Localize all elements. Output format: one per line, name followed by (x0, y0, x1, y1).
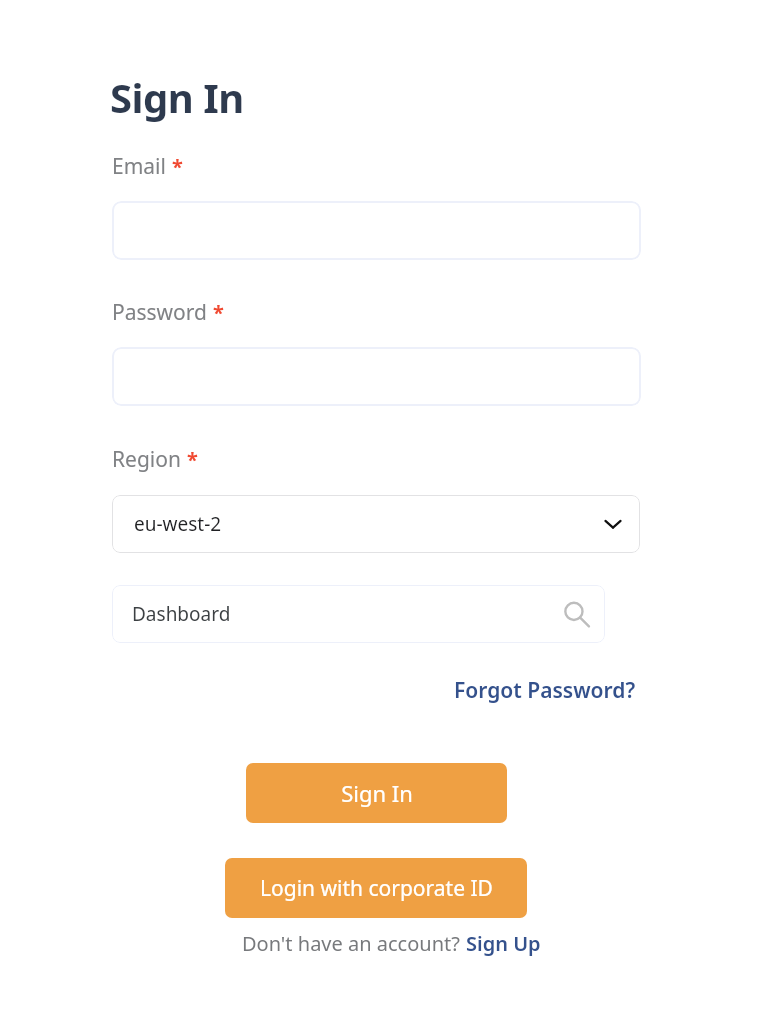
button[interactable]: Sign In (246, 763, 507, 823)
staticText: * (172, 153, 183, 180)
staticText: Login with corporate ID (260, 874, 493, 903)
staticText: * (213, 299, 224, 326)
button[interactable]: Dashboard (112, 585, 605, 643)
staticText: Dashboard (132, 601, 231, 627)
button[interactable]: Login with corporate ID (225, 858, 527, 918)
staticText: eu-west-2 (134, 511, 222, 537)
staticText: Sign In (341, 778, 413, 808)
staticText: Region (112, 445, 181, 474)
staticText: Don't have an account? (242, 930, 466, 957)
staticText: * (187, 446, 198, 473)
other: Search (563, 601, 589, 627)
staticText: Password (112, 298, 207, 327)
button[interactable]: eu-west-2 (112, 495, 640, 553)
button[interactable]: Password input (112, 347, 641, 406)
button[interactable]: Sign Up (466, 930, 541, 957)
staticText: Email (112, 152, 166, 181)
staticText: Sign Up (466, 930, 541, 957)
button[interactable]: Forgot Password? (450, 672, 640, 709)
staticText: Sign In (110, 70, 244, 124)
staticText: Forgot Password? (454, 676, 636, 705)
button[interactable]: Email input (112, 201, 641, 260)
